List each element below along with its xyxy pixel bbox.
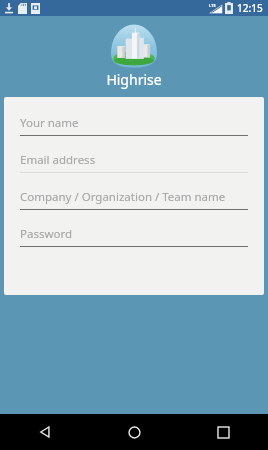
button[interactable]: Email address: [20, 152, 248, 173]
staticText: 12:15: [237, 1, 263, 15]
staticText: Email address: [20, 152, 96, 168]
button[interactable]: Home: [90, 414, 179, 450]
staticText: Password: [20, 226, 73, 242]
staticText: LTE: [209, 3, 216, 8]
staticText: Your name: [20, 115, 79, 131]
button[interactable]: Recent apps: [179, 414, 268, 450]
button[interactable]: Company / Organization / Team name: [20, 189, 248, 210]
staticText: Company / Organization / Team name: [20, 189, 226, 205]
button[interactable]: Your name: [20, 115, 248, 136]
button[interactable]: Password: [20, 226, 248, 247]
staticText: Highrise: [106, 70, 162, 89]
button[interactable]: Back: [0, 414, 90, 450]
